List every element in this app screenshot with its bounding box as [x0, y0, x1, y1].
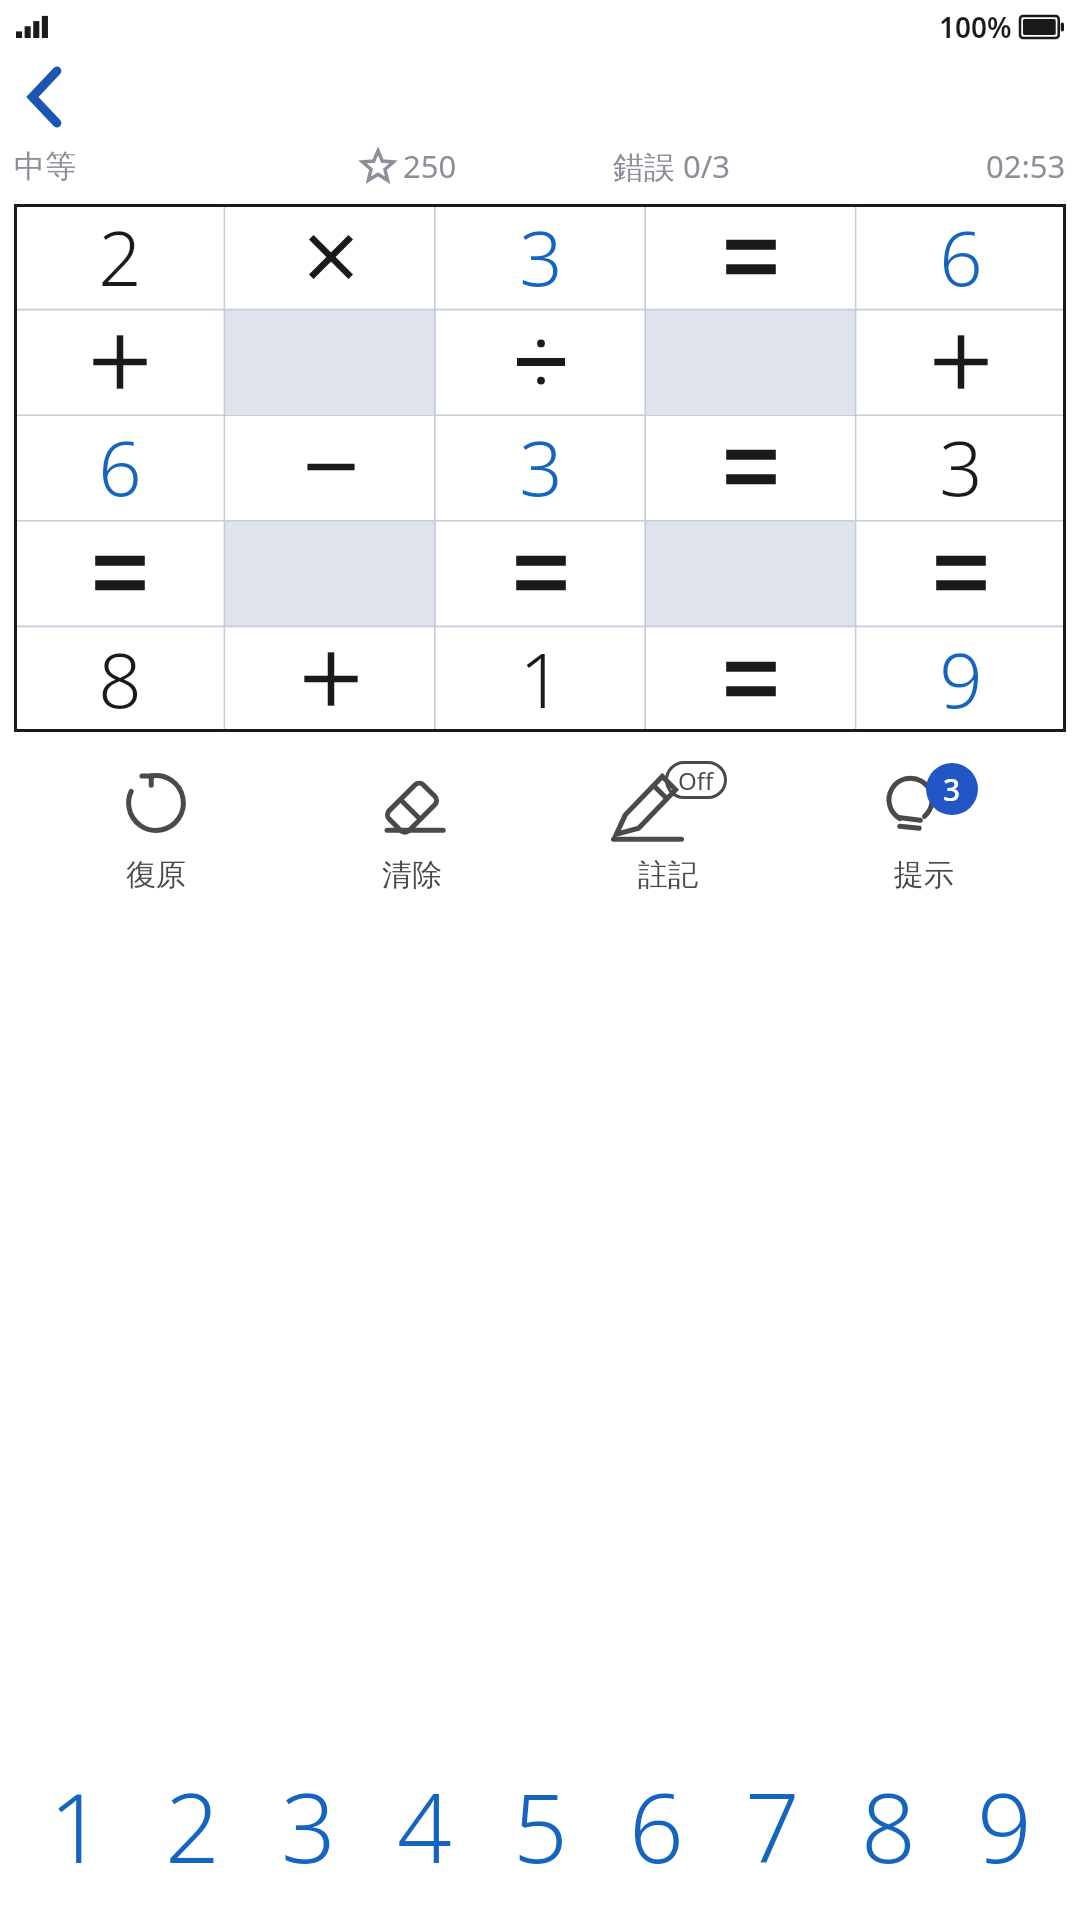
- button[interactable]: 3: [250, 1760, 366, 1880]
- button[interactable]: 8: [14, 626, 225, 732]
- button[interactable]: 9: [856, 626, 1066, 732]
- button[interactable]: 1: [436, 626, 646, 732]
- button[interactable]: Notes: [540, 754, 796, 900]
- staticText: 提示: [894, 856, 954, 894]
- staticText: 6: [629, 1760, 684, 1880]
- staticText: 8: [861, 1760, 916, 1880]
- button[interactable]: [856, 520, 1066, 626]
- button[interactable]: Undo: [28, 754, 284, 900]
- staticText: 錯誤 0/3: [613, 145, 731, 187]
- button[interactable]: Erase: [284, 754, 540, 900]
- staticText: Off: [678, 764, 714, 797]
- staticText: 1: [519, 627, 563, 731]
- staticText: 註記: [638, 856, 698, 894]
- button[interactable]: 9: [946, 1760, 1062, 1880]
- staticText: 清除: [382, 856, 442, 894]
- staticText: 8: [98, 627, 142, 731]
- button[interactable]: 7: [714, 1760, 830, 1880]
- staticText: 4: [397, 1760, 452, 1880]
- button[interactable]: [14, 520, 225, 626]
- staticText: 3: [519, 205, 563, 309]
- staticText: 3: [519, 415, 563, 519]
- staticText: 7: [745, 1760, 800, 1880]
- staticText: 9: [939, 627, 983, 731]
- staticText: 中等: [14, 147, 76, 186]
- button[interactable]: [646, 309, 856, 414]
- button[interactable]: [646, 520, 856, 626]
- button[interactable]: [436, 520, 646, 626]
- button[interactable]: 6: [14, 414, 225, 520]
- staticText: 3: [943, 769, 961, 810]
- staticText: 5: [513, 1760, 568, 1880]
- button[interactable]: [225, 414, 436, 520]
- button[interactable]: 3: [436, 414, 646, 520]
- button[interactable]: [646, 626, 856, 732]
- button[interactable]: [646, 204, 856, 309]
- button[interactable]: 6: [598, 1760, 714, 1880]
- button[interactable]: [646, 414, 856, 520]
- button[interactable]: 6: [856, 204, 1066, 309]
- button[interactable]: [856, 309, 1066, 414]
- staticText: 3: [281, 1760, 336, 1880]
- button[interactable]: 3: [856, 414, 1066, 520]
- staticText: 2: [98, 205, 142, 309]
- button[interactable]: 3: [436, 204, 646, 309]
- staticText: 9: [977, 1760, 1032, 1880]
- staticText: 6: [939, 205, 983, 309]
- staticText: 復原: [126, 856, 186, 894]
- button[interactable]: [225, 520, 436, 626]
- button[interactable]: Back: [10, 61, 82, 133]
- button[interactable]: 1: [18, 1760, 134, 1880]
- staticText: 6: [98, 415, 142, 519]
- button[interactable]: 5: [482, 1760, 598, 1880]
- staticText: 2: [165, 1760, 220, 1880]
- button[interactable]: [225, 626, 436, 732]
- button[interactable]: 8: [830, 1760, 946, 1880]
- button[interactable]: [14, 309, 225, 414]
- staticText: 100%: [939, 8, 1012, 46]
- staticText: 3: [939, 415, 983, 519]
- button[interactable]: Hint: [796, 754, 1052, 900]
- button[interactable]: [225, 309, 436, 414]
- button[interactable]: 2: [134, 1760, 250, 1880]
- button[interactable]: [436, 309, 646, 414]
- button[interactable]: 4: [366, 1760, 482, 1880]
- staticText: 1: [49, 1760, 104, 1880]
- button[interactable]: 2: [14, 204, 225, 309]
- staticText: 250: [403, 145, 457, 187]
- staticText: 02:53: [986, 145, 1066, 187]
- button[interactable]: [225, 204, 436, 309]
